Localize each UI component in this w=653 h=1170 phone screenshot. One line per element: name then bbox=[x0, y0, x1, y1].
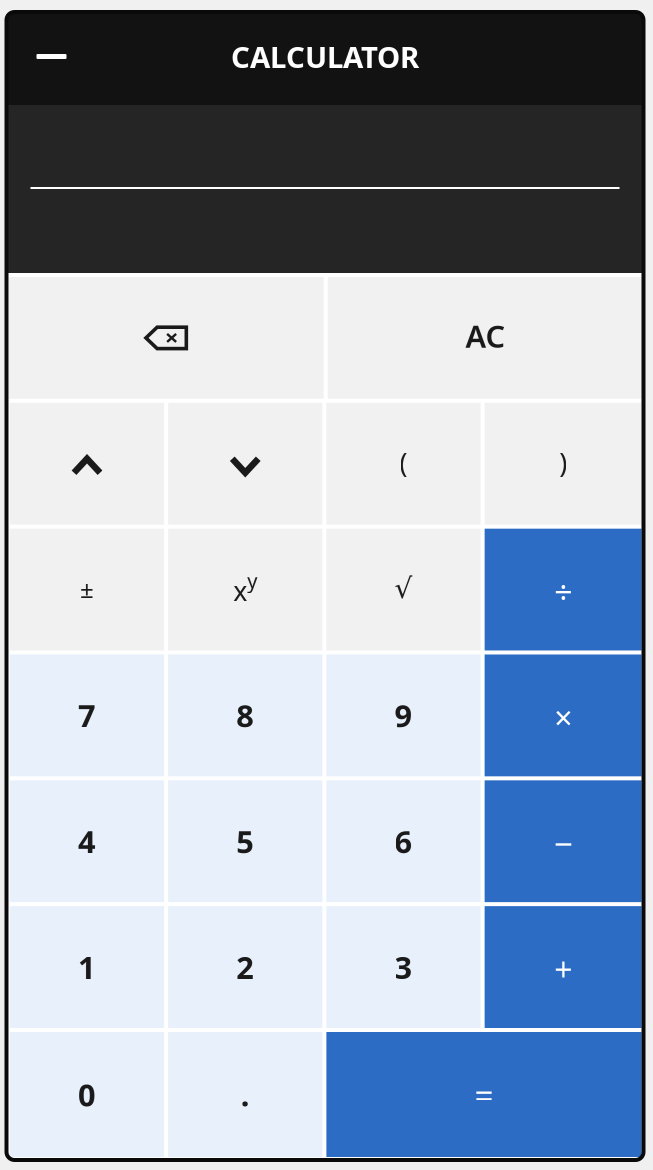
button[interactable]: 6 bbox=[326, 780, 481, 902]
button[interactable]: = bbox=[326, 1032, 642, 1157]
button[interactable]: 5 bbox=[168, 780, 322, 902]
button[interactable]: − bbox=[485, 780, 642, 902]
button[interactable]: 3 bbox=[326, 906, 481, 1028]
staticText: × bbox=[554, 696, 572, 739]
staticText: √ bbox=[394, 573, 412, 604]
button[interactable]: x to the power of y bbox=[168, 529, 322, 650]
staticText: 8 bbox=[236, 695, 254, 736]
button[interactable]: Next entry bbox=[168, 403, 322, 525]
staticText: 5 bbox=[236, 821, 254, 862]
button[interactable]: 8 bbox=[168, 654, 322, 776]
staticText: − bbox=[554, 821, 573, 865]
button[interactable]: 1 bbox=[10, 906, 164, 1028]
button[interactable]: 0 bbox=[10, 1032, 164, 1157]
button[interactable]: × bbox=[485, 654, 642, 776]
button[interactable]: 4 bbox=[10, 780, 164, 902]
button[interactable]: √ bbox=[326, 529, 481, 650]
staticText: 4 bbox=[78, 821, 96, 862]
staticText: ( bbox=[399, 445, 407, 480]
button[interactable]: . bbox=[168, 1032, 322, 1157]
staticText: ) bbox=[559, 445, 567, 480]
staticText: y bbox=[247, 567, 257, 594]
staticText: 0 bbox=[78, 1074, 96, 1115]
button[interactable]: 9 bbox=[326, 654, 481, 776]
staticText: 7 bbox=[78, 695, 96, 736]
staticText: . bbox=[241, 1074, 250, 1115]
staticText: + bbox=[554, 948, 572, 990]
staticText: 6 bbox=[394, 821, 412, 862]
staticText: x bbox=[233, 573, 247, 608]
staticText: 3 bbox=[394, 947, 412, 987]
button[interactable]: AC bbox=[328, 277, 643, 399]
staticText: = bbox=[474, 1072, 493, 1117]
button[interactable]: 7 bbox=[10, 654, 164, 776]
staticText: 1 bbox=[78, 947, 96, 987]
staticText: ± bbox=[80, 573, 94, 604]
button[interactable]: ( bbox=[326, 403, 481, 525]
button[interactable]: ) bbox=[485, 403, 642, 525]
staticText: 9 bbox=[394, 695, 412, 736]
button[interactable]: + bbox=[485, 906, 642, 1028]
staticText: AC bbox=[465, 316, 505, 356]
button[interactable]: Backspace bbox=[8, 277, 324, 399]
staticText: ÷ bbox=[554, 570, 572, 613]
staticText: 2 bbox=[236, 947, 254, 987]
staticText: CALCULATOR bbox=[231, 37, 419, 76]
button[interactable]: Minimize bbox=[22, 30, 80, 86]
button[interactable]: Previous entry bbox=[10, 403, 164, 525]
button[interactable]: ÷ bbox=[485, 529, 642, 650]
button[interactable]: ± bbox=[10, 529, 164, 650]
button[interactable]: 2 bbox=[168, 906, 322, 1028]
